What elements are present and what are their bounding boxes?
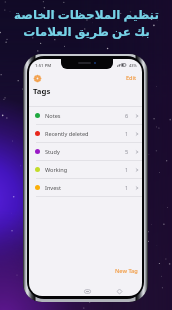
staticText: Invest [45, 184, 62, 192]
staticText: 1 [125, 184, 129, 192]
button[interactable]: Study [29, 143, 142, 160]
staticText: 1 [125, 130, 129, 138]
staticText: بك عن طريق العلامات [23, 23, 150, 39]
staticText: Working [45, 166, 68, 174]
staticText: Notes [45, 112, 61, 120]
staticText: 43% [129, 63, 137, 68]
staticText: تنظيم الملاحظات الخاصة [14, 6, 159, 22]
staticText: Recently deleted [45, 130, 89, 138]
button[interactable]: Working [29, 161, 142, 178]
staticText: 6 [125, 112, 129, 120]
staticText: Study [45, 148, 60, 156]
staticText: New Tag [115, 267, 138, 275]
button[interactable]: Edit [123, 71, 140, 85]
staticText: 5 [125, 148, 129, 156]
button[interactable]: Notes [82, 286, 93, 296]
button[interactable]: Recently deleted [29, 125, 142, 142]
button[interactable]: Invest [29, 179, 142, 196]
button[interactable]: New Tag [112, 264, 141, 278]
button[interactable]: Settings [32, 73, 43, 84]
button[interactable]: Notes [29, 107, 142, 124]
staticText: 1 [125, 166, 129, 174]
button[interactable]: Share [114, 286, 125, 296]
staticText: Edit [126, 74, 137, 82]
staticText: 1:51 PM [35, 62, 52, 68]
staticText: Tags [33, 86, 51, 97]
